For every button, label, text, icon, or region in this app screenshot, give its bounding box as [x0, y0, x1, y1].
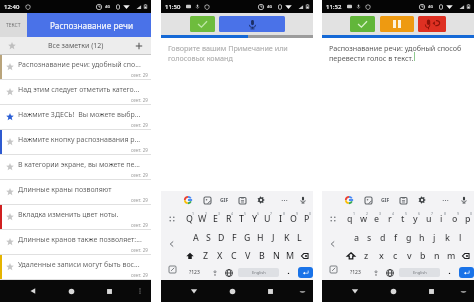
- button[interactable]: Add note: [127, 37, 151, 54]
- button[interactable]: a: [350, 228, 363, 247]
- button[interactable]: ТЕКСТ: [0, 13, 27, 37]
- button[interactable]: Clipboard: [236, 194, 248, 206]
- button[interactable]: Нажмите ЗДЕСЬ! Вы можете выбр...: [0, 105, 151, 130]
- button[interactable]: Period: [279, 265, 298, 280]
- button[interactable]: B: [255, 247, 269, 265]
- button[interactable]: Вкладка изменить цвет ноты.: [0, 205, 151, 230]
- button[interactable]: x: [374, 247, 388, 265]
- button[interactable]: Comma: [368, 265, 383, 280]
- button[interactable]: More options: [133, 284, 147, 298]
- button[interactable]: Y: [248, 209, 261, 228]
- button[interactable]: I: [274, 209, 287, 228]
- button[interactable]: ?123: [343, 265, 368, 280]
- button[interactable]: R: [222, 209, 235, 228]
- button[interactable]: W: [196, 209, 209, 228]
- button[interactable]: Backspace: [297, 247, 313, 265]
- button[interactable]: k: [441, 228, 454, 247]
- button[interactable]: w: [357, 209, 370, 228]
- button[interactable]: D: [215, 228, 228, 247]
- button[interactable]: J: [267, 228, 280, 247]
- button[interactable]: Handwriting: [166, 263, 178, 275]
- button[interactable]: Home: [63, 283, 79, 299]
- button[interactable]: Google search: [343, 194, 355, 206]
- button[interactable]: A: [189, 228, 202, 247]
- button[interactable]: C: [227, 247, 241, 265]
- button[interactable]: Stickers: [201, 194, 213, 206]
- button[interactable]: V: [241, 247, 255, 265]
- button[interactable]: p: [461, 209, 474, 228]
- button[interactable]: Voice input: [297, 194, 309, 206]
- button[interactable]: Enter: [459, 267, 474, 278]
- button[interactable]: Change language: [222, 265, 235, 280]
- button[interactable]: X: [213, 247, 227, 265]
- button[interactable]: Shift: [343, 247, 359, 265]
- button[interactable]: j: [428, 228, 441, 247]
- button[interactable]: ?123: [182, 265, 207, 280]
- button[interactable]: Распознавание речи: [27, 13, 151, 37]
- button[interactable]: l: [454, 228, 467, 247]
- button[interactable]: Shift: [182, 247, 198, 265]
- button[interactable]: Move keyboard: [327, 213, 339, 225]
- button[interactable]: T: [235, 209, 248, 228]
- button[interactable]: Z: [198, 247, 213, 265]
- button[interactable]: Recents: [262, 283, 278, 299]
- button[interactable]: Recents: [423, 283, 439, 299]
- button[interactable]: F: [228, 228, 241, 247]
- button[interactable]: Удаленные записи могут быть вос...: [0, 255, 151, 280]
- button[interactable]: В категории экране, вы можете пе...: [0, 155, 151, 180]
- button[interactable]: f: [389, 228, 402, 247]
- button[interactable]: Enter: [298, 267, 313, 278]
- button[interactable]: q: [343, 209, 357, 228]
- button[interactable]: H: [254, 228, 267, 247]
- button[interactable]: More options: [439, 194, 451, 206]
- button[interactable]: Home: [224, 283, 240, 299]
- button[interactable]: Switch keyboard: [295, 284, 309, 298]
- button[interactable]: n: [430, 247, 444, 265]
- button[interactable]: u: [422, 209, 435, 228]
- button[interactable]: m: [444, 247, 458, 265]
- button[interactable]: Home: [385, 283, 401, 299]
- button[interactable]: Handwriting: [327, 263, 339, 275]
- button[interactable]: GIF: [220, 194, 229, 206]
- button[interactable]: E: [209, 209, 222, 228]
- button[interactable]: U: [261, 209, 274, 228]
- button[interactable]: v: [402, 247, 416, 265]
- button[interactable]: Распознавание речи: удобный спо...: [0, 55, 151, 80]
- button[interactable]: z: [359, 247, 374, 265]
- button[interactable]: GIF: [381, 194, 390, 206]
- button[interactable]: O: [287, 209, 300, 228]
- button[interactable]: Start recording: [219, 16, 285, 32]
- button[interactable]: S: [202, 228, 215, 247]
- button[interactable]: English: [399, 268, 440, 277]
- button[interactable]: P: [300, 209, 313, 228]
- button[interactable]: Collapse keyboard: [166, 238, 178, 250]
- button[interactable]: h: [415, 228, 428, 247]
- button[interactable]: Hide keyboard: [347, 283, 363, 299]
- button[interactable]: Google search: [182, 194, 194, 206]
- button[interactable]: Нажмите кнопку распознавания р...: [0, 130, 151, 155]
- button[interactable]: g: [402, 228, 415, 247]
- button[interactable]: Над этим следует отметить катего...: [0, 80, 151, 105]
- button[interactable]: b: [416, 247, 430, 265]
- button[interactable]: Recents: [101, 283, 117, 299]
- button[interactable]: Pause: [380, 16, 414, 32]
- button[interactable]: M: [283, 247, 297, 265]
- button[interactable]: Change language: [383, 265, 396, 280]
- button[interactable]: Keyboard settings: [416, 194, 428, 206]
- button[interactable]: o: [448, 209, 461, 228]
- button[interactable]: Comma: [207, 265, 222, 280]
- button[interactable]: Collapse keyboard: [327, 238, 339, 250]
- button[interactable]: English: [238, 268, 279, 277]
- button[interactable]: Back: [25, 283, 41, 299]
- button[interactable]: G: [241, 228, 254, 247]
- button[interactable]: Длинные краны позволяют: [0, 180, 151, 205]
- button[interactable]: More options: [278, 194, 290, 206]
- button[interactable]: Stickers: [362, 194, 374, 206]
- button[interactable]: c: [388, 247, 402, 265]
- button[interactable]: N: [269, 247, 283, 265]
- button[interactable]: Switch keyboard: [456, 284, 470, 298]
- button[interactable]: Period: [440, 265, 459, 280]
- button[interactable]: Stop recording: [418, 16, 446, 32]
- button[interactable]: Keyboard settings: [255, 194, 267, 206]
- button[interactable]: Clipboard: [397, 194, 409, 206]
